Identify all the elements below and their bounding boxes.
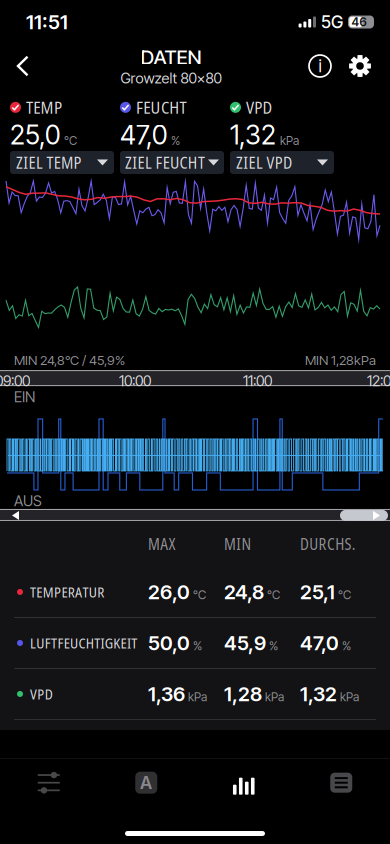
button[interactable]: ZIEL VPD bbox=[230, 151, 334, 174]
staticText: MIN bbox=[224, 533, 252, 554]
staticText: kPa bbox=[340, 689, 359, 704]
button[interactable]: ZIEL TEMP bbox=[10, 151, 114, 174]
staticText: A bbox=[140, 772, 153, 793]
staticText: 09:00 bbox=[0, 372, 30, 390]
staticText: 5G bbox=[321, 11, 343, 32]
staticText: % bbox=[342, 638, 351, 653]
button[interactable]: Log bbox=[292, 759, 390, 807]
staticText: °C bbox=[338, 587, 351, 602]
button[interactable]: Information bbox=[300, 44, 340, 88]
staticText: 25,1 bbox=[300, 580, 335, 604]
staticText: °C bbox=[193, 587, 206, 602]
staticText: kPa bbox=[188, 689, 207, 704]
button[interactable]: ZIEL FEUCHT bbox=[120, 151, 224, 174]
staticText: ZIEL FEUCHT bbox=[125, 152, 205, 173]
button[interactable]: Back bbox=[0, 44, 42, 88]
staticText: 24,8 bbox=[224, 580, 264, 604]
staticText: 1,28 bbox=[224, 682, 262, 706]
staticText: 10:00 bbox=[119, 372, 151, 390]
staticText: AUS bbox=[14, 492, 42, 510]
button[interactable]: Data bbox=[195, 759, 292, 807]
button[interactable]: Controls bbox=[0, 759, 97, 807]
staticText: FEUCHT bbox=[136, 96, 186, 119]
staticText: 11:51 bbox=[26, 10, 68, 34]
staticText: VPD bbox=[30, 684, 53, 703]
staticText: °C bbox=[267, 587, 280, 602]
button[interactable]: Settings bbox=[340, 44, 380, 88]
staticText: kPa bbox=[265, 689, 284, 704]
staticText: ZIEL VPD bbox=[236, 152, 292, 173]
staticText: Growzelt 80×80 bbox=[120, 69, 221, 87]
staticText: EIN bbox=[14, 388, 35, 406]
staticText: 11:00 bbox=[243, 372, 272, 390]
staticText: kPa bbox=[280, 133, 299, 148]
staticText: LUFTFEUCHTIGKEIT bbox=[30, 633, 137, 652]
button[interactable]: Automation bbox=[97, 759, 195, 807]
staticText: MIN 24,8°C / 45,9% bbox=[14, 352, 125, 368]
staticText: i bbox=[318, 55, 321, 76]
staticText: TEMP bbox=[26, 96, 62, 119]
staticText: 1,32 bbox=[300, 682, 337, 706]
staticText: DURCHS. bbox=[300, 533, 356, 554]
staticText: ZIEL TEMP bbox=[16, 152, 81, 173]
staticText: 26,0 bbox=[148, 580, 190, 604]
staticText: % bbox=[269, 638, 278, 653]
staticText: 1,32 bbox=[230, 119, 276, 151]
staticText: % bbox=[193, 638, 202, 653]
staticText: 25,0 bbox=[10, 119, 60, 151]
staticText: TEMPERATUR bbox=[30, 582, 104, 601]
staticText: DATEN bbox=[140, 45, 201, 69]
staticText: 46 bbox=[351, 15, 367, 29]
staticText: VPD bbox=[246, 96, 273, 119]
staticText: 12:0 bbox=[367, 372, 390, 390]
staticText: MAX bbox=[148, 533, 176, 554]
staticText: 47,0 bbox=[300, 631, 339, 655]
staticText: 50,0 bbox=[148, 631, 190, 655]
staticText: 1,36 bbox=[148, 682, 185, 706]
staticText: % bbox=[171, 133, 180, 148]
staticText: °C bbox=[64, 133, 77, 148]
staticText: 45,9 bbox=[224, 631, 266, 655]
staticText: MIN 1,28kPa bbox=[305, 352, 376, 368]
staticText: 47,0 bbox=[120, 119, 167, 151]
